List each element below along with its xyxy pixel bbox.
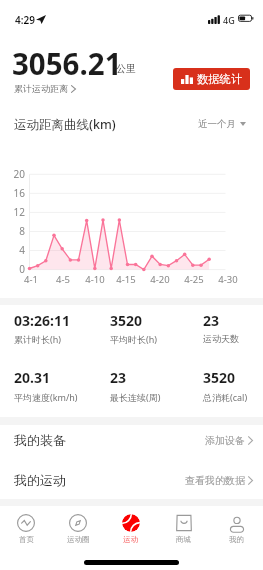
staticText: 累计时长(h): [14, 333, 61, 345]
staticText: 12: [1, 205, 25, 219]
button[interactable]: 累计运动距离: [14, 83, 76, 94]
button[interactable]: 首页: [0, 506, 52, 550]
staticText: 23: [203, 311, 220, 330]
staticText: 20.31: [14, 368, 50, 387]
other: 我的: [228, 514, 246, 532]
staticText: 我的: [229, 535, 244, 544]
staticText: 4: [1, 243, 25, 257]
staticText: 20: [1, 167, 25, 181]
button[interactable]: 我的装备: [0, 420, 263, 460]
other: 运动: [122, 514, 140, 532]
staticText: 运动: [123, 535, 138, 544]
other: 运动圈: [69, 514, 87, 532]
staticText: 平均速度(km/h): [14, 391, 78, 403]
staticText: 运动圈: [67, 535, 90, 544]
staticText: 4-5: [49, 273, 77, 286]
staticText: 近一个月: [198, 118, 236, 130]
staticText: 4G: [223, 14, 235, 26]
staticText: 4-30: [214, 273, 242, 286]
staticText: 我的装备: [14, 432, 66, 448]
staticText: 3520: [110, 311, 143, 330]
staticText: 3520: [203, 368, 236, 387]
staticText: 数据统计: [197, 72, 243, 86]
staticText: 16: [1, 186, 25, 200]
button[interactable]: 近一个月: [198, 118, 246, 130]
staticText: 3056.21: [12, 43, 122, 83]
staticText: 公里: [116, 62, 136, 75]
other: Location: [36, 15, 46, 24]
staticText: 4-25: [180, 273, 208, 286]
staticText: 4-10: [81, 273, 109, 286]
button[interactable]: 我的运动: [0, 460, 263, 500]
button[interactable]: 数据统计: [173, 68, 250, 90]
staticText: 4-15: [112, 273, 140, 286]
button[interactable]: 运动: [104, 506, 157, 550]
staticText: 查看我的数据: [185, 474, 245, 487]
other: Signal strength: [208, 15, 221, 24]
staticText: 8: [1, 224, 25, 238]
staticText: 运动距离曲线(km): [14, 116, 116, 133]
other: 商城: [175, 514, 193, 532]
other: 首页: [17, 514, 35, 532]
staticText: 4-20: [146, 273, 174, 286]
button[interactable]: 运动圈: [52, 506, 104, 550]
staticText: 累计运动距离: [14, 83, 68, 94]
staticText: 我的运动: [14, 472, 66, 488]
staticText: 0: [1, 262, 25, 276]
button[interactable]: 我的: [210, 506, 263, 550]
button[interactable]: 商城: [157, 506, 210, 550]
staticText: 添加设备: [205, 434, 245, 447]
staticText: 总消耗(cal): [203, 391, 248, 403]
other: Battery: [238, 15, 254, 22]
staticText: 03:26:11: [14, 311, 70, 330]
staticText: 4-1: [17, 273, 45, 286]
staticText: 商城: [176, 535, 191, 544]
staticText: 4:29: [15, 13, 35, 27]
staticText: 运动天数: [203, 333, 239, 344]
staticText: 首页: [19, 535, 34, 544]
staticText: 最长连续(周): [110, 391, 161, 403]
staticText: 平均时长(h): [110, 333, 157, 345]
staticText: 23: [110, 368, 127, 387]
